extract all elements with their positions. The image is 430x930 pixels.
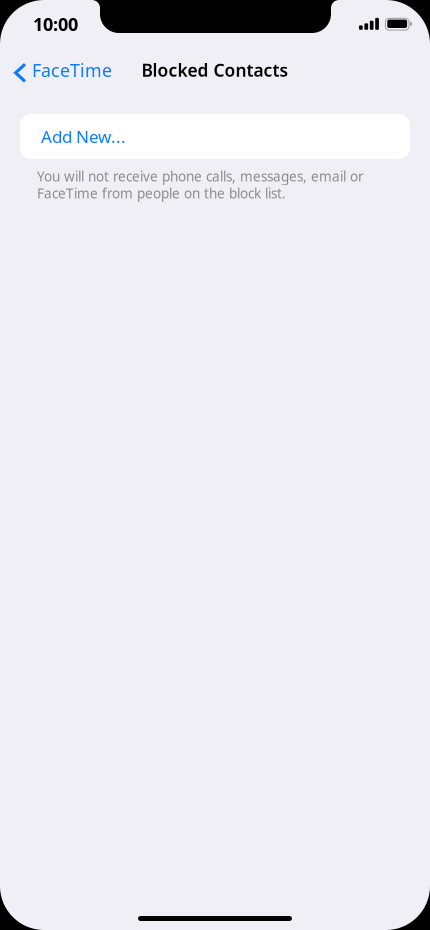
staticText: You will not receive phone calls, messag… [37, 167, 364, 185]
staticText: FaceTime [32, 58, 112, 82]
staticText: Blocked Contacts [141, 58, 288, 82]
button[interactable]: Add New... [20, 114, 410, 159]
staticText: FaceTime from people on the block list. [37, 184, 286, 202]
button[interactable]: FaceTime [0, 48, 122, 92]
staticText: 10:00 [33, 12, 78, 36]
staticText: Add New... [41, 125, 126, 148]
